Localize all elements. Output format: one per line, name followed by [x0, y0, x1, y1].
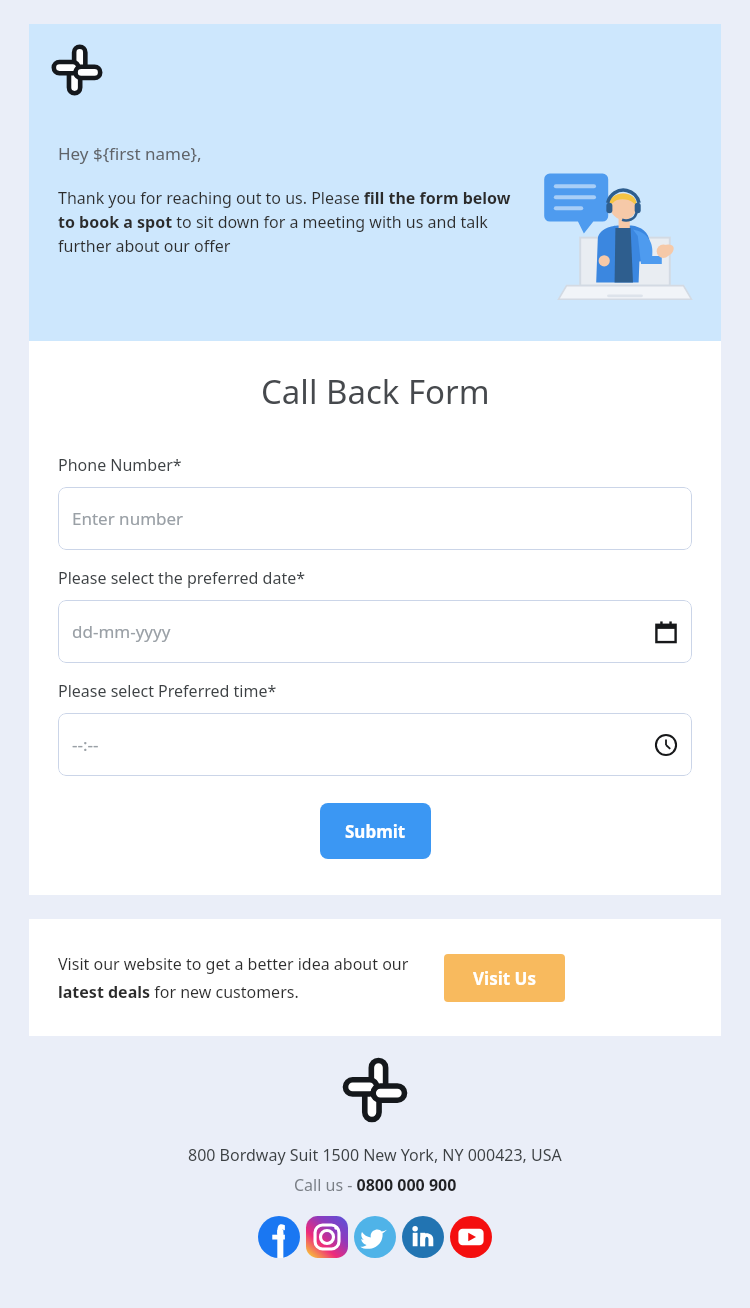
button[interactable]: dd-mm-yyyy: [58, 600, 692, 663]
staticText: Call Back Form: [261, 369, 490, 414]
button[interactable]: Enter number: [58, 487, 692, 550]
staticText: Please select Preferred time*: [58, 680, 277, 702]
button[interactable]: YouTube: [450, 1216, 492, 1258]
other: Open time picker: [654, 733, 678, 757]
staticText: Enter number: [72, 507, 184, 530]
other: Open date picker: [654, 620, 678, 644]
staticText: Thank you for reaching out to us. Please…: [58, 187, 513, 257]
staticText: dd-mm-yyyy: [72, 620, 171, 643]
staticText: Submit: [345, 820, 406, 843]
staticText: Phone Number*: [58, 454, 182, 476]
staticText: Hey ${first name},: [58, 142, 202, 165]
button[interactable]: LinkedIn: [402, 1216, 444, 1258]
staticText: Call us - 0800 000 900: [294, 1174, 457, 1196]
button[interactable]: Instagram: [306, 1216, 348, 1258]
staticText: --:--: [72, 733, 99, 756]
staticText: 800 Bordway Suit 1500 New York, NY 00042…: [188, 1144, 562, 1166]
button[interactable]: Visit Us: [444, 954, 565, 1002]
button[interactable]: --:--: [58, 713, 692, 776]
staticText: Visit Us: [473, 967, 536, 990]
staticText: Please select the preferred date*: [58, 567, 305, 589]
staticText: Visit our website to get a better idea a…: [58, 953, 428, 1003]
button[interactable]: Twitter: [354, 1216, 396, 1258]
button[interactable]: Facebook: [258, 1216, 300, 1258]
button[interactable]: Submit: [320, 803, 431, 859]
